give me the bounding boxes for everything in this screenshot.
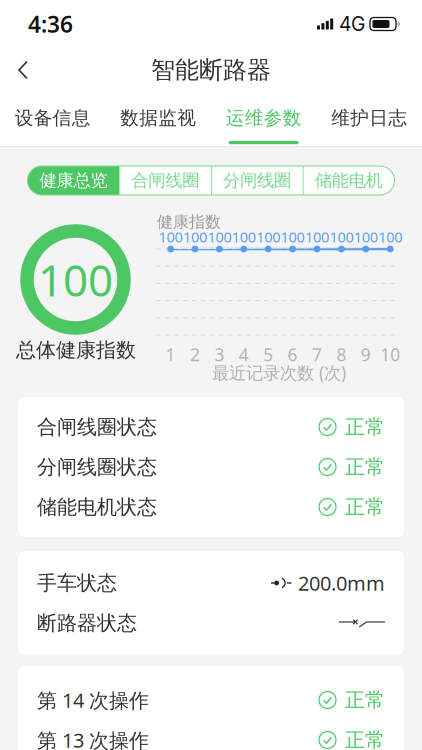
- staticText: 10: [380, 343, 400, 366]
- staticText: 100: [38, 250, 113, 309]
- button[interactable]: 第 14 次操作: [18, 680, 404, 720]
- staticText: 100: [159, 227, 183, 246]
- button[interactable]: 储能电机: [303, 166, 395, 195]
- staticText: 100: [329, 227, 353, 246]
- staticText: 数据监视: [120, 106, 196, 129]
- staticText: 4G: [339, 12, 365, 36]
- button[interactable]: 断路器状态: [18, 603, 404, 643]
- staticText: 100: [207, 227, 231, 246]
- staticText: 正常: [345, 688, 385, 712]
- staticText: 100: [305, 227, 329, 246]
- button[interactable]: 维护日志: [316, 92, 422, 146]
- staticText: 2: [190, 343, 200, 366]
- staticText: 储能电机: [315, 170, 383, 191]
- staticText: 200.0mm: [298, 570, 385, 596]
- button[interactable]: 分闸线圈: [211, 166, 303, 195]
- button[interactable]: 健康总览: [27, 166, 119, 195]
- button[interactable]: 第 13 次操作: [18, 720, 404, 750]
- staticText: 设备信息: [15, 106, 91, 129]
- staticText: 100: [256, 227, 280, 246]
- button[interactable]: 数据监视: [105, 92, 211, 146]
- staticText: 合闸线圈: [131, 170, 199, 191]
- staticText: 储能电机状态: [37, 495, 157, 519]
- staticText: 最近记录次数 (次): [212, 361, 346, 384]
- staticText: 100: [354, 227, 378, 246]
- button[interactable]: 合闸线圈状态: [18, 407, 404, 447]
- staticText: 7: [312, 343, 322, 366]
- staticText: 3: [214, 343, 224, 366]
- staticText: 分闸线圈: [223, 170, 291, 191]
- staticText: 100: [183, 227, 207, 246]
- staticText: 维护日志: [331, 106, 407, 129]
- staticText: 手车状态: [37, 571, 117, 595]
- staticText: 8: [336, 343, 346, 366]
- staticText: 9: [361, 343, 371, 366]
- button[interactable]: 设备信息: [0, 92, 105, 146]
- button[interactable]: 合闸线圈: [119, 166, 211, 195]
- staticText: 合闸线圈状态: [37, 415, 157, 439]
- staticText: 5: [263, 343, 273, 366]
- staticText: 健康总览: [39, 170, 107, 191]
- staticText: 断路器状态: [37, 611, 137, 635]
- staticText: 正常: [345, 728, 385, 750]
- staticText: 第 14 次操作: [37, 687, 149, 713]
- staticText: 健康指数: [157, 212, 221, 232]
- staticText: 总体健康指数: [16, 338, 136, 362]
- staticText: 运维参数: [226, 106, 302, 129]
- button[interactable]: 运维参数: [211, 92, 316, 146]
- staticText: 100: [281, 227, 305, 246]
- staticText: 正常: [345, 495, 385, 519]
- button[interactable]: Back: [0, 48, 46, 92]
- staticText: 分闸线圈状态: [37, 455, 157, 479]
- staticText: 正常: [345, 415, 385, 439]
- button[interactable]: 储能电机状态: [18, 487, 404, 527]
- button[interactable]: 分闸线圈状态: [18, 447, 404, 487]
- staticText: 4:36: [28, 9, 73, 39]
- staticText: 100: [378, 227, 402, 246]
- staticText: 第 13 次操作: [37, 727, 149, 750]
- button[interactable]: 手车状态: [18, 563, 404, 603]
- staticText: 正常: [345, 455, 385, 479]
- staticText: 6: [288, 343, 298, 366]
- staticText: 100: [232, 227, 256, 246]
- staticText: 智能断路器: [151, 55, 271, 85]
- staticText: 1: [166, 343, 176, 366]
- staticText: 4: [239, 343, 249, 366]
